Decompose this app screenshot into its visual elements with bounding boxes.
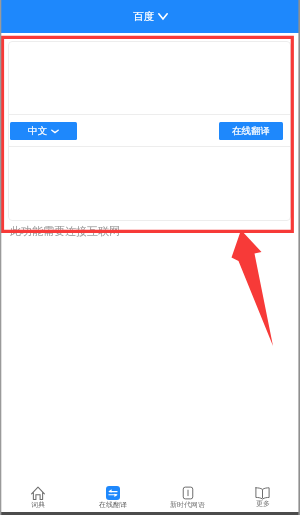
staticText: 新时代网语 xyxy=(170,500,205,509)
button[interactable]: 更多 xyxy=(225,470,300,512)
staticText: 更多 xyxy=(256,499,270,508)
button[interactable]: 词典 xyxy=(0,470,75,512)
staticText: 在线翻译 xyxy=(99,500,127,509)
staticText: 在线翻译 xyxy=(232,125,270,137)
button[interactable]: 在线翻译 xyxy=(219,122,283,140)
staticText: 此功能需要连接互联网 xyxy=(10,224,120,238)
staticText: 中文 xyxy=(28,125,47,137)
staticText: 百度 xyxy=(133,10,154,23)
staticText: 词典 xyxy=(31,500,45,509)
button[interactable]: 新时代网语 xyxy=(150,470,225,512)
button[interactable]: 百度 xyxy=(125,8,176,25)
button[interactable]: 在线翻译 xyxy=(75,470,150,512)
button[interactable]: 中文 xyxy=(10,122,77,140)
